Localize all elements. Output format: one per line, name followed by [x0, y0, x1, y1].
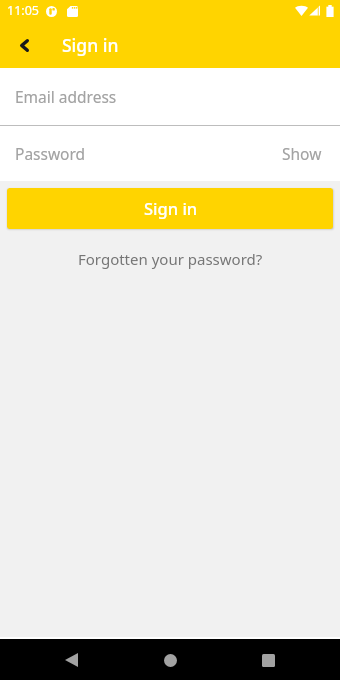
button[interactable]: Home [153, 643, 187, 677]
staticText: Sign in [144, 197, 198, 219]
button[interactable]: Sign in [7, 188, 333, 229]
staticText: 11:05 [7, 2, 39, 19]
button[interactable]: Email address [0, 68, 340, 125]
button[interactable]: Navigate up [9, 30, 39, 60]
button[interactable]: Password [0, 126, 340, 181]
staticText: Show [282, 143, 322, 164]
button[interactable]: Recent apps [251, 643, 285, 677]
button[interactable]: Back [54, 643, 88, 677]
staticText: Password [15, 143, 86, 164]
button[interactable]: Forgotten your password? [0, 245, 340, 273]
staticText: Email address [15, 86, 117, 107]
staticText: Forgotten your password? [78, 249, 263, 269]
staticText: Sign in [62, 33, 119, 57]
